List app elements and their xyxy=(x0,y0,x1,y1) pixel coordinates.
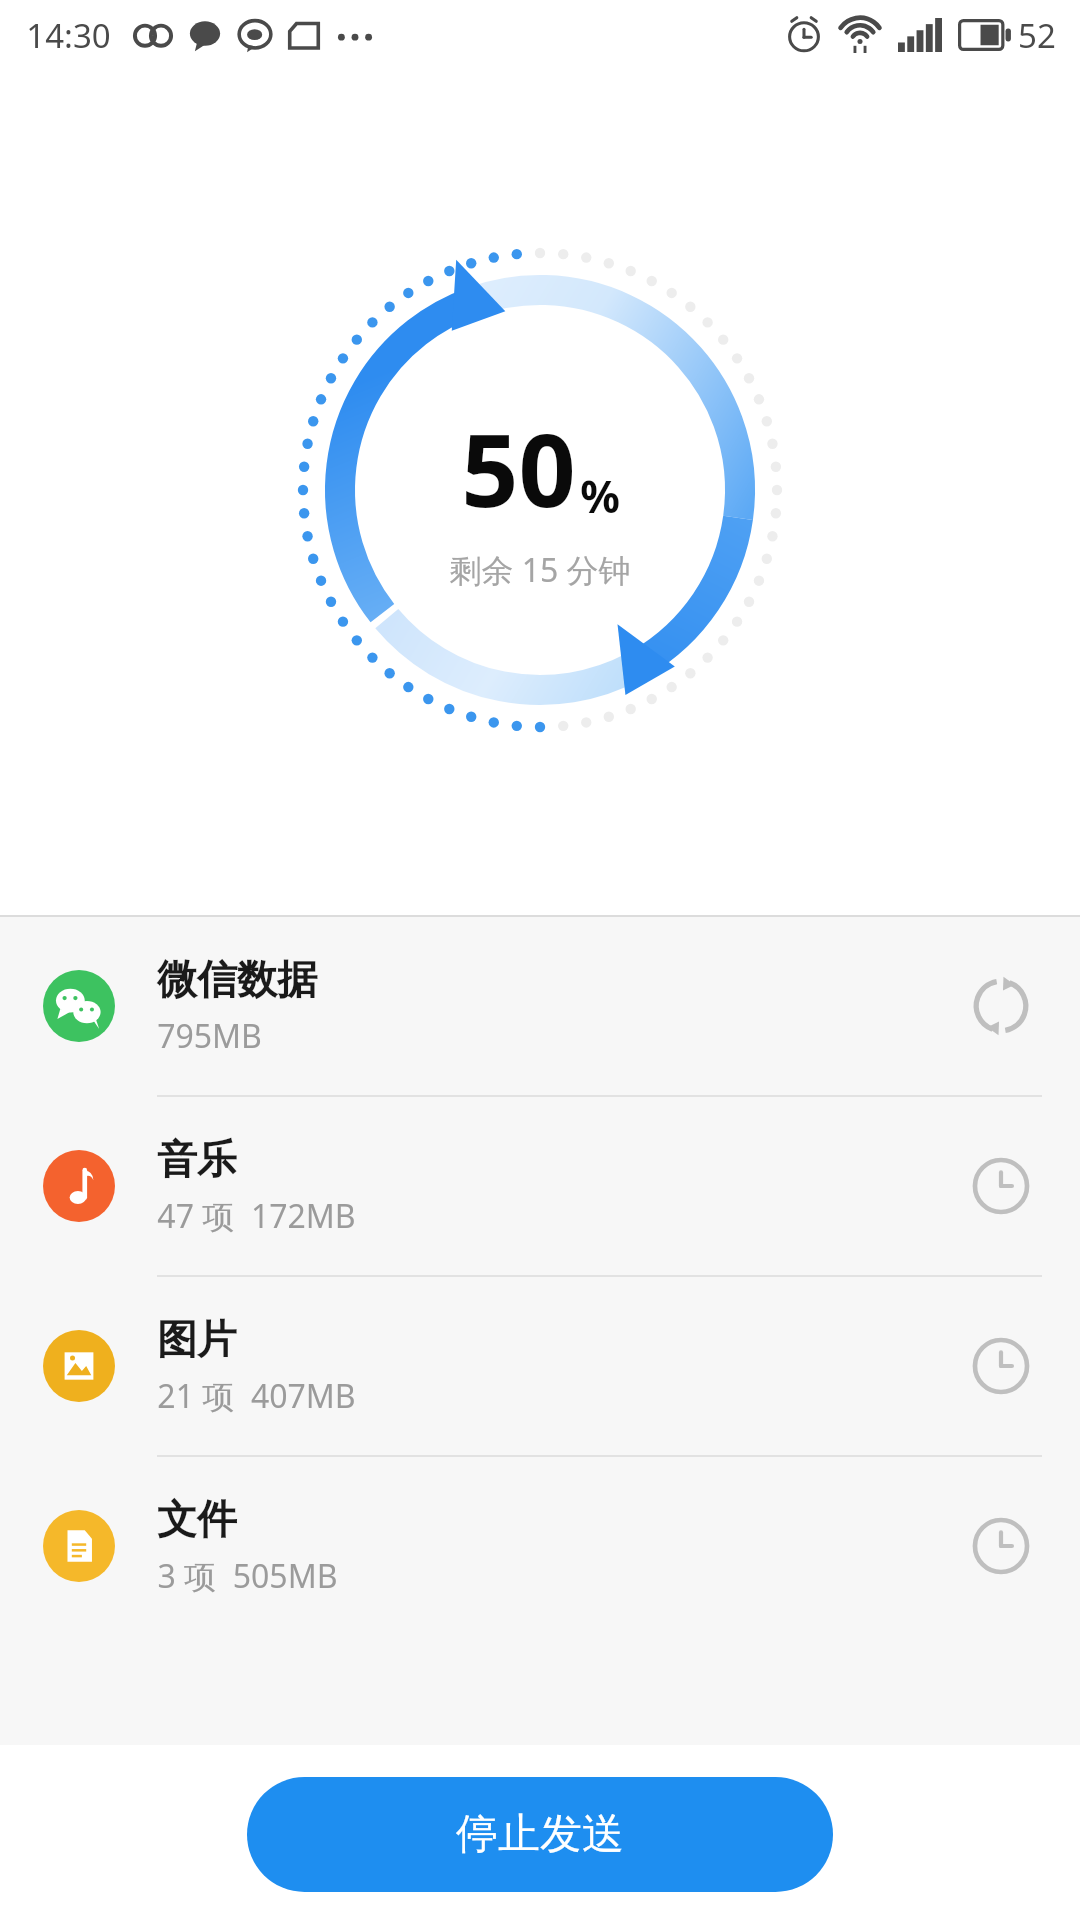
other: Waiting xyxy=(970,1515,1032,1577)
staticText: 剩余 15 分钟 xyxy=(449,548,631,592)
button[interactable]: 文件 xyxy=(0,1457,1080,1635)
button[interactable]: 图片 xyxy=(0,1277,1080,1457)
staticText: 音乐 xyxy=(157,1134,237,1184)
staticText: 3 项 505MB xyxy=(157,1554,338,1598)
staticText: 微信数据 xyxy=(157,954,317,1004)
other: Waiting xyxy=(970,1155,1032,1217)
staticText: 停止发送 xyxy=(456,1808,624,1861)
staticText: 52 xyxy=(1018,13,1056,58)
staticText: 50 xyxy=(461,400,576,536)
staticText: % xyxy=(580,466,620,526)
other: Waiting xyxy=(970,1335,1032,1397)
staticText: 图片 xyxy=(157,1314,237,1364)
staticText: 14:30 xyxy=(26,13,111,58)
other: Syncing xyxy=(970,975,1032,1037)
button[interactable]: 微信数据 xyxy=(0,917,1080,1097)
staticText: 文件 xyxy=(157,1494,237,1544)
button[interactable]: 音乐 xyxy=(0,1097,1080,1277)
staticText: 795MB xyxy=(157,1014,262,1058)
staticText: 47 项 172MB xyxy=(157,1194,356,1238)
button[interactable]: 停止发送 xyxy=(247,1777,833,1892)
staticText: 21 项 407MB xyxy=(157,1374,356,1418)
